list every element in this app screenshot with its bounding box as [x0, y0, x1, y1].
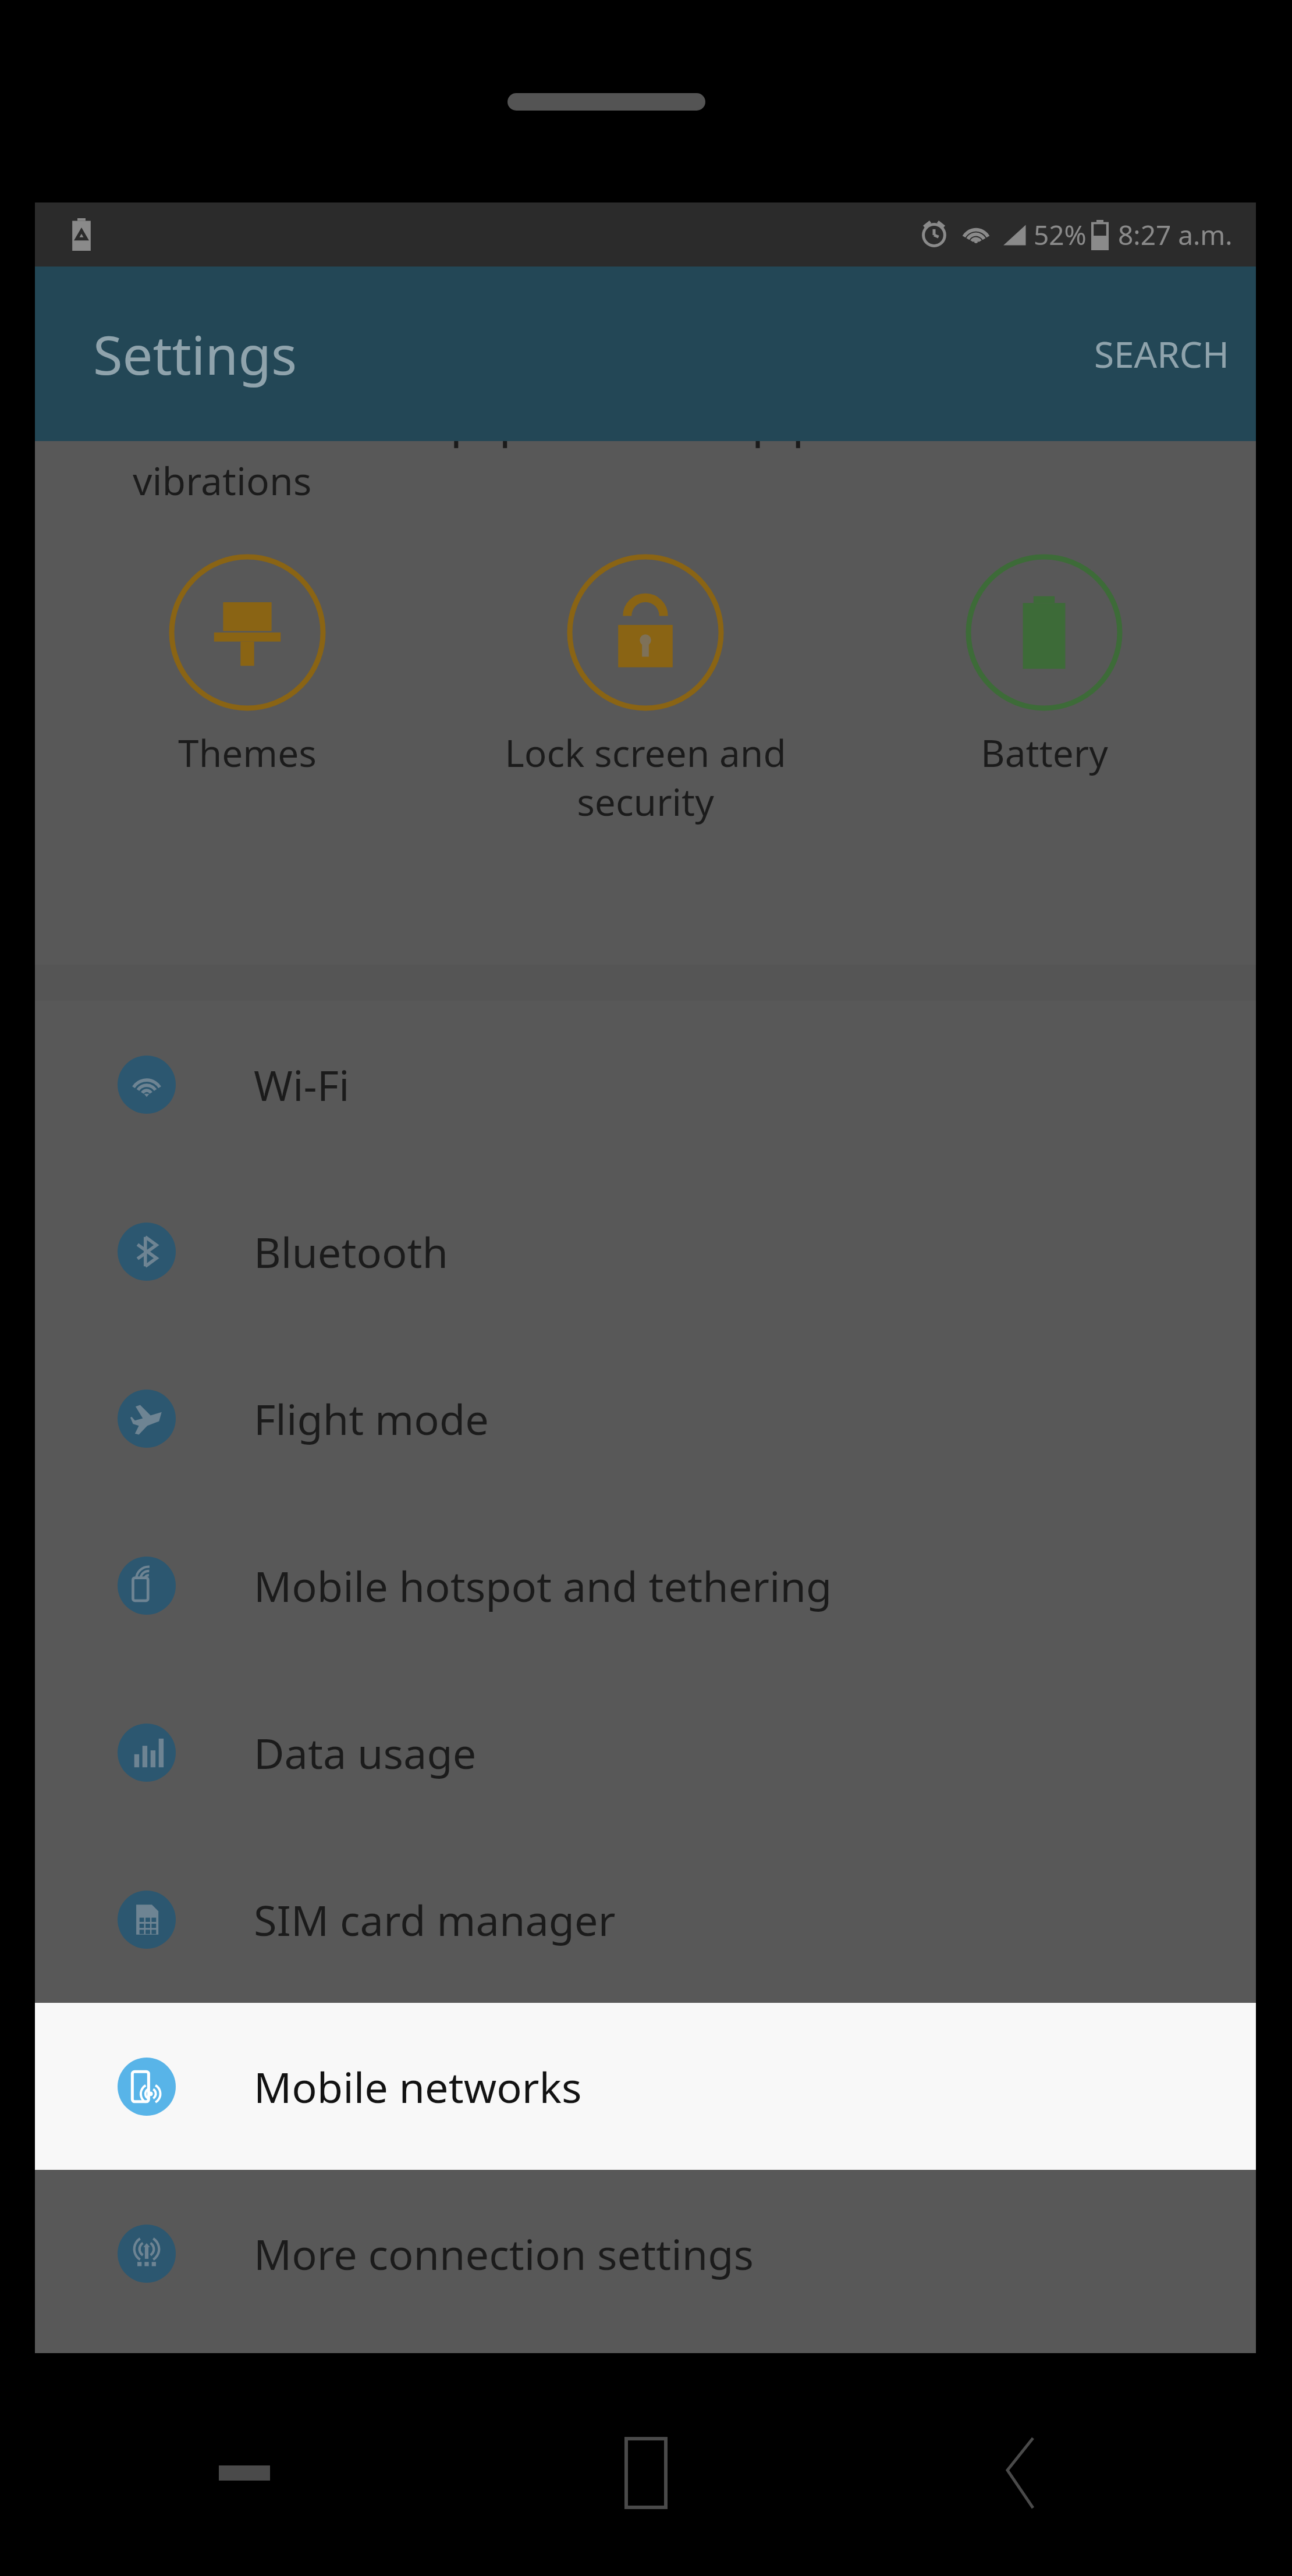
staticText: Lock screen and security — [505, 727, 786, 827]
button[interactable]: Wi-Fi — [35, 1001, 1256, 1168]
button[interactable]: Bluetooth — [35, 1168, 1256, 1335]
button[interactable]: SIM card manager — [35, 1836, 1256, 2003]
staticText: SIM card manager — [254, 1891, 616, 1948]
staticText: Settings — [93, 318, 297, 390]
staticText: 52% — [1034, 216, 1087, 253]
staticText: More connection settings — [254, 2225, 754, 2282]
button[interactable]: Home — [594, 2432, 698, 2514]
staticText: Mobile networks — [254, 2058, 582, 2115]
button[interactable]: Recent apps — [192, 2432, 297, 2514]
button[interactable]: Mobile networks — [35, 2003, 1256, 2170]
button[interactable]: Back — [966, 2432, 1071, 2514]
staticText: Mobile hotspot and tethering — [254, 1557, 832, 1614]
button[interactable]: Themes — [61, 552, 434, 778]
staticText: vibrations — [133, 454, 312, 506]
button[interactable]: Data usage — [35, 1669, 1256, 1836]
button[interactable]: Lock screen and security — [459, 552, 832, 827]
button[interactable]: Battery — [858, 552, 1230, 778]
staticText: Battery — [981, 727, 1108, 778]
button[interactable]: More connection settings — [35, 2170, 1256, 2337]
staticText: Flight mode — [254, 1390, 489, 1447]
staticText: 8:27 a.m. — [1118, 216, 1233, 253]
staticText: SEARCH — [1094, 329, 1229, 378]
button[interactable]: Flight mode — [35, 1335, 1256, 1502]
staticText: Themes — [178, 727, 317, 778]
staticText: Bluetooth — [254, 1223, 449, 1280]
staticText: Wi-Fi — [254, 1056, 350, 1113]
button[interactable]: Mobile hotspot and tethering — [35, 1502, 1256, 1669]
staticText: Data usage — [254, 1724, 477, 1781]
button[interactable]: SEARCH — [1067, 306, 1256, 401]
